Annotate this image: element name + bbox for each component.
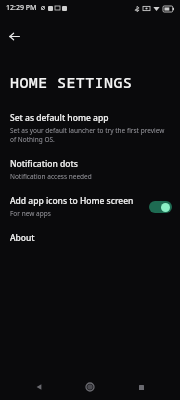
staticText: Set as your default launcher to try the … [10, 126, 172, 144]
button[interactable]: Back [27, 375, 51, 399]
button[interactable]: Home [78, 375, 102, 399]
button[interactable]: Add app icons to Home screen toggle [149, 201, 172, 213]
button[interactable]: Recent apps [129, 375, 153, 399]
staticText: Add app icons to Home screen [10, 195, 134, 207]
staticText: Set as default home app [10, 112, 109, 124]
button[interactable]: Back [4, 26, 24, 46]
staticText: Notification access needed [10, 172, 92, 181]
button[interactable]: Add app icons to Home screen [0, 188, 180, 225]
button[interactable]: About [0, 225, 180, 251]
button[interactable]: Set as default home app [0, 105, 180, 151]
staticText: 12:29 PM [6, 3, 37, 13]
staticText: HOME SETTINGS [10, 72, 133, 92]
button[interactable]: Notification dots [0, 151, 180, 188]
staticText: Notification dots [10, 158, 78, 170]
staticText: For new apps [10, 209, 51, 218]
staticText: About [10, 232, 35, 244]
